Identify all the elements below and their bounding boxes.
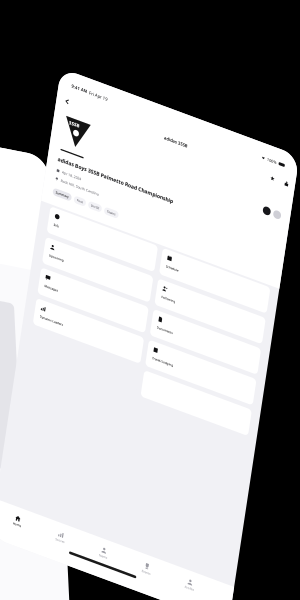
button[interactable]: Teams <box>200 360 247 382</box>
staticText: Teams <box>209 365 238 377</box>
staticText: 3SSB <box>49 141 84 160</box>
button[interactable]: Div III <box>148 360 192 382</box>
button[interactable]: Back <box>26 72 76 112</box>
staticText: Upcoming <box>50 557 98 569</box>
staticText: Apr 18, 2024 <box>51 298 114 312</box>
button[interactable]: Upcoming <box>32 513 300 594</box>
staticText: Rock Hill, South Carolina <box>51 324 176 338</box>
button[interactable]: Info <box>32 418 300 499</box>
staticText: adidas Boys 3SSB Palmetto Road Champions… <box>32 260 300 281</box>
staticText: Div III <box>157 365 183 377</box>
